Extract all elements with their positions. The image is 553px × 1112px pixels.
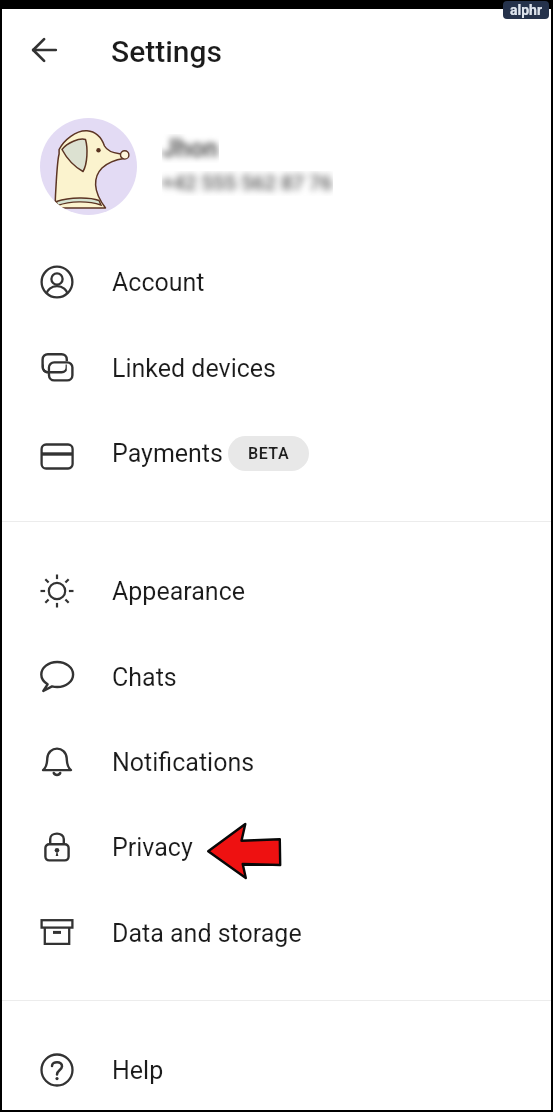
button[interactable]: Privacy xyxy=(2,804,551,890)
staticText: Help xyxy=(112,1056,164,1085)
button[interactable]: BETA xyxy=(228,436,309,471)
button[interactable]: Appearance xyxy=(2,548,551,634)
button[interactable]: Chats xyxy=(2,634,551,720)
staticText: Notifications xyxy=(112,748,255,777)
staticText: Payments xyxy=(112,439,223,468)
button[interactable]: Linked devices xyxy=(2,325,551,411)
staticText: Linked devices xyxy=(112,354,276,383)
staticText: BETA xyxy=(248,444,290,463)
button[interactable]: Account xyxy=(2,239,551,325)
staticText: Appearance xyxy=(112,577,245,606)
staticText: Account xyxy=(112,268,205,297)
staticText: Settings xyxy=(111,34,223,69)
button[interactable]: Jhon xyxy=(2,100,551,225)
button[interactable]: Notifications xyxy=(2,719,551,805)
staticText: +42 555 562 87 76 xyxy=(162,171,333,196)
staticText: Data and storage xyxy=(112,919,302,948)
button[interactable]: Payments xyxy=(2,410,551,496)
button[interactable]: Help xyxy=(2,1027,551,1112)
button[interactable]: Back xyxy=(18,25,68,75)
button[interactable]: Data and storage xyxy=(2,890,551,976)
staticText: Chats xyxy=(112,663,177,692)
staticText: Jhon xyxy=(162,134,219,163)
staticText: alphr xyxy=(510,2,543,18)
staticText: Privacy xyxy=(112,833,193,862)
